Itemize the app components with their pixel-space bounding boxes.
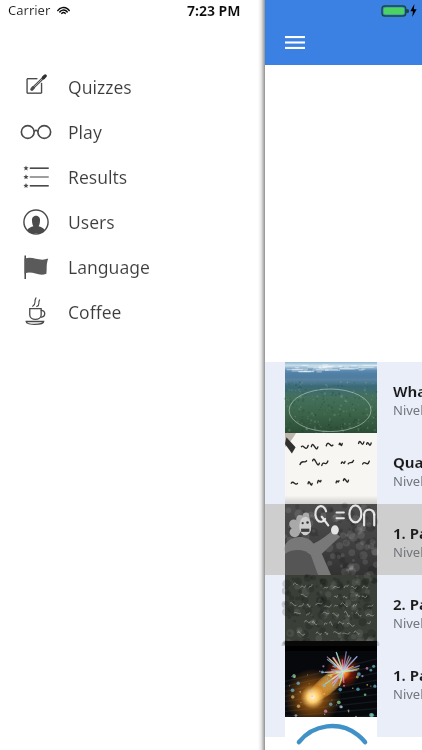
staticText: Nivel 1: [393, 401, 422, 419]
staticText: 2. Particles: [393, 594, 422, 614]
button[interactable]: Users: [0, 199, 265, 244]
button[interactable]: 1. Particles: [265, 646, 422, 717]
staticText: Nivel 2: [393, 472, 422, 490]
button[interactable]: Quantum Mechanics: [265, 433, 422, 504]
staticText: Carrier: [8, 1, 51, 19]
button[interactable]: What is the LHC?: [265, 362, 422, 433]
button[interactable]: Coffee: [0, 289, 265, 334]
staticText: Language: [68, 255, 150, 279]
staticText: Nivel 1: [393, 543, 422, 561]
button[interactable]: Quizzes: [0, 64, 265, 109]
staticText: What is the LHC?: [393, 381, 422, 401]
staticText: 1. Particles: [393, 665, 422, 685]
button[interactable]: Play: [0, 109, 265, 154]
button[interactable]: Language: [0, 244, 265, 289]
button[interactable]: Results: [0, 154, 265, 199]
staticText: Coffee: [68, 300, 122, 324]
staticText: Users: [68, 210, 115, 234]
staticText: Nivel 3: [393, 685, 422, 703]
staticText: Quantum Mechanics: [393, 452, 422, 472]
staticText: 7:23 PM: [187, 1, 241, 20]
staticText: Results: [68, 165, 128, 189]
staticText: Play: [68, 120, 102, 144]
button[interactable]: 2. Particles: [265, 575, 422, 646]
staticText: Quizzes: [68, 75, 132, 99]
button[interactable]: 1. Particles: [265, 504, 422, 575]
staticText: Nivel 2: [393, 614, 422, 632]
staticText: 1. Particles: [393, 523, 422, 543]
button[interactable]: Open navigation menu: [275, 22, 315, 62]
